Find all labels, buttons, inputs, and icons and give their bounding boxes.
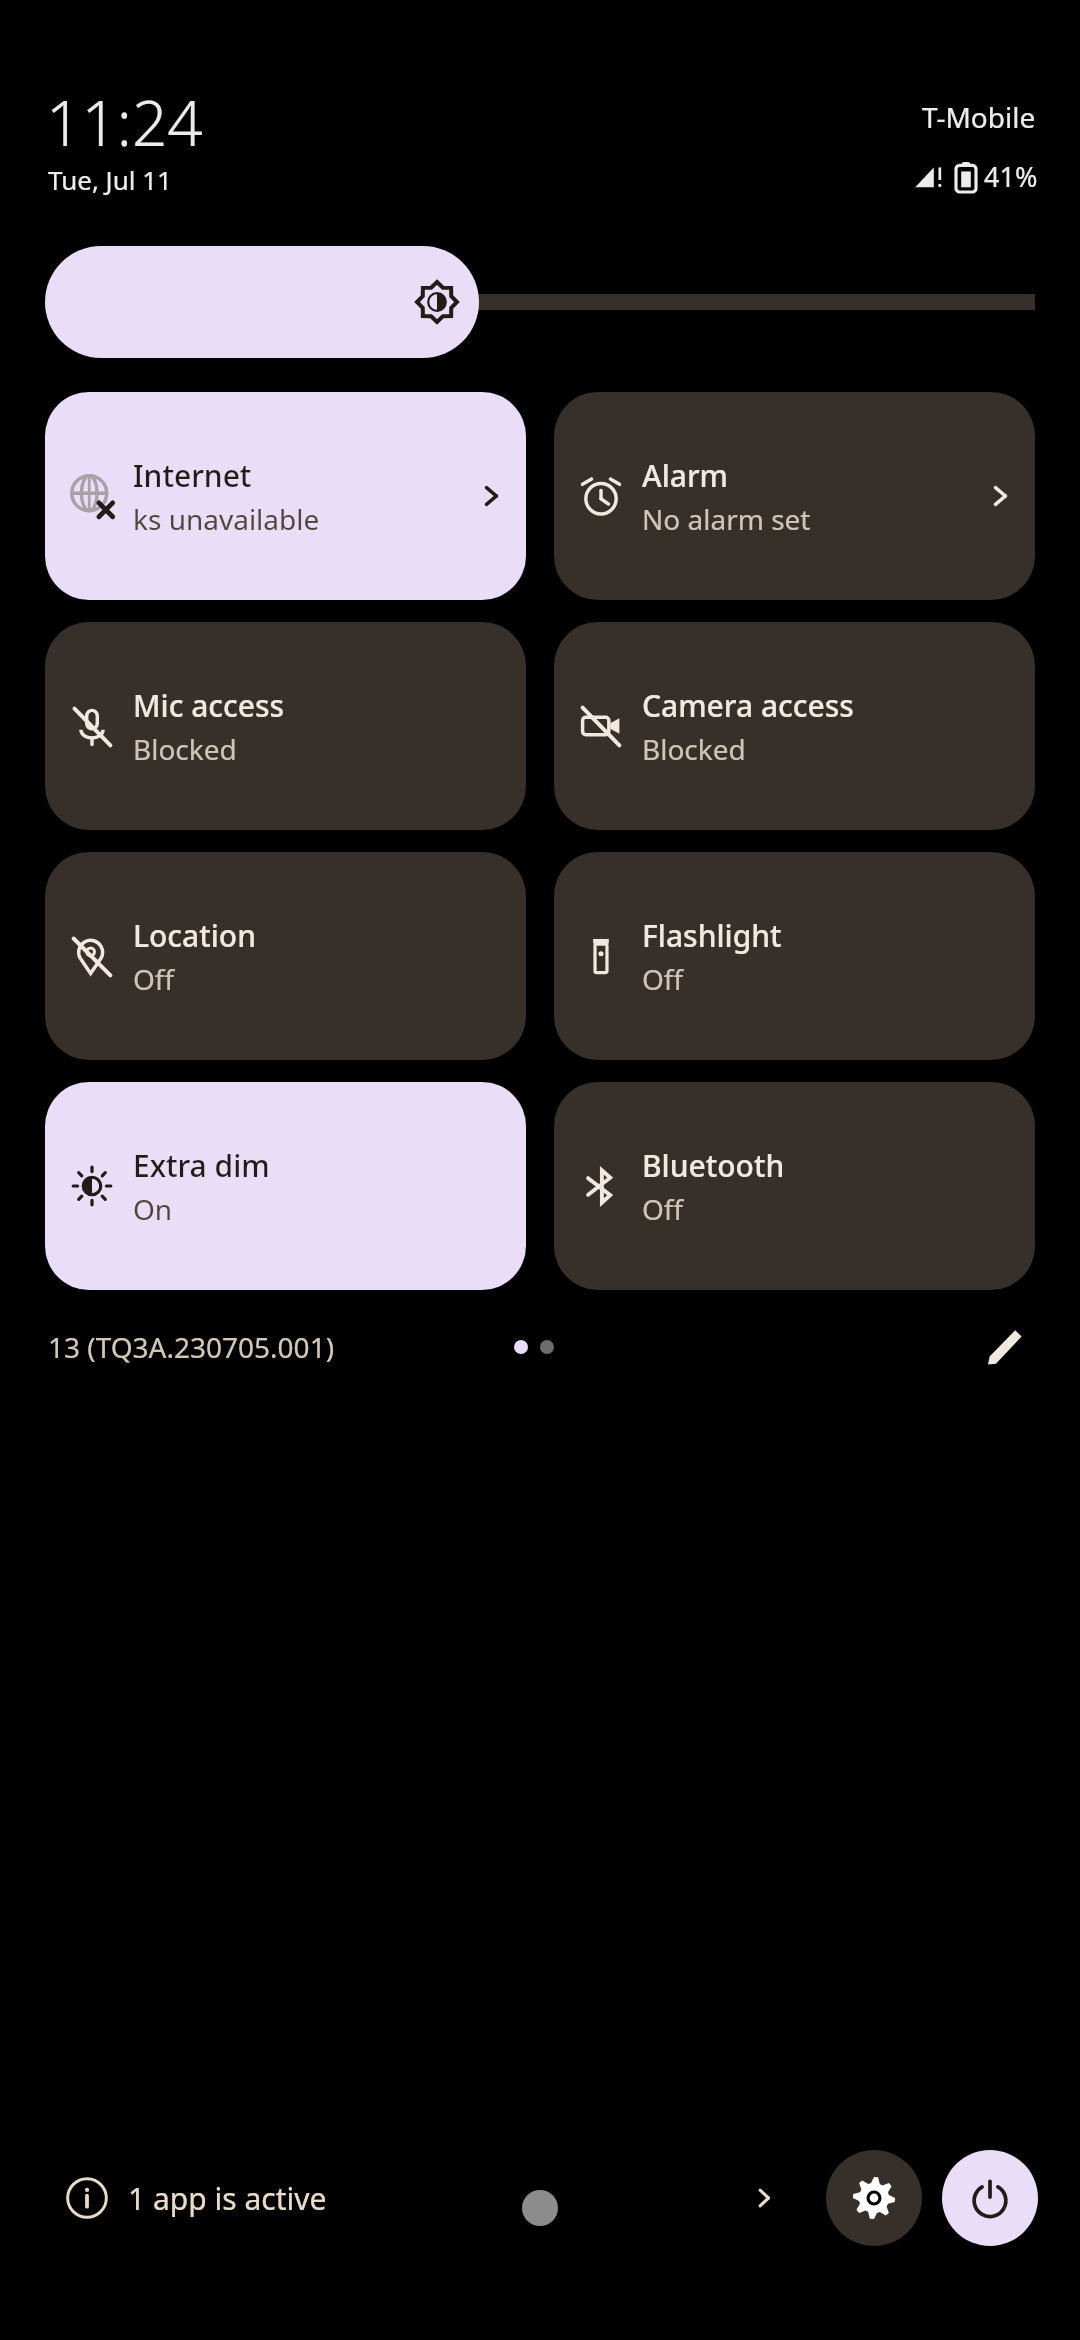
button[interactable]: Location <box>45 852 526 1060</box>
button[interactable]: Camera access <box>554 622 1035 830</box>
button[interactable]: Alarm <box>554 392 1035 600</box>
staticText: Camera access <box>642 685 854 726</box>
button[interactable]: Settings <box>826 2150 922 2246</box>
staticText: No alarm set <box>642 500 811 538</box>
staticText: Off <box>642 1190 684 1228</box>
staticText: Off <box>133 960 175 998</box>
staticText: Tue, Jul 11 <box>48 162 172 197</box>
staticText: ks unavailable <box>133 500 320 538</box>
staticText: Internet <box>133 455 252 496</box>
staticText: Mic access <box>133 685 285 726</box>
button[interactable]: Edit tiles <box>976 1319 1032 1375</box>
button[interactable]: Bluetooth <box>554 1082 1035 1290</box>
button[interactable]: Extra dim <box>45 1082 526 1290</box>
staticText: Extra dim <box>133 1145 270 1186</box>
staticText: Flashlight <box>642 915 782 956</box>
staticText: 1 app is active <box>128 2178 327 2219</box>
staticText: 13 (TQ3A.230705.001) <box>48 1328 335 1366</box>
staticText: Off <box>642 960 684 998</box>
button[interactable]: Brightness <box>45 246 479 358</box>
staticText: On <box>133 1190 173 1228</box>
staticText: Blocked <box>133 730 237 768</box>
staticText: 11:24 <box>46 80 203 164</box>
staticText: Blocked <box>642 730 746 768</box>
staticText: T-Mobile <box>922 98 1036 136</box>
staticText: Location <box>133 915 256 956</box>
button[interactable]: 1 app is active <box>42 2150 802 2246</box>
staticText: Alarm <box>642 455 729 496</box>
button[interactable]: Mic access <box>45 622 526 830</box>
staticText: Bluetooth <box>642 1145 785 1186</box>
button[interactable]: Flashlight <box>554 852 1035 1060</box>
button[interactable]: Internet <box>45 392 526 600</box>
staticText: 41% <box>984 158 1038 195</box>
button[interactable]: Power <box>942 2150 1038 2246</box>
